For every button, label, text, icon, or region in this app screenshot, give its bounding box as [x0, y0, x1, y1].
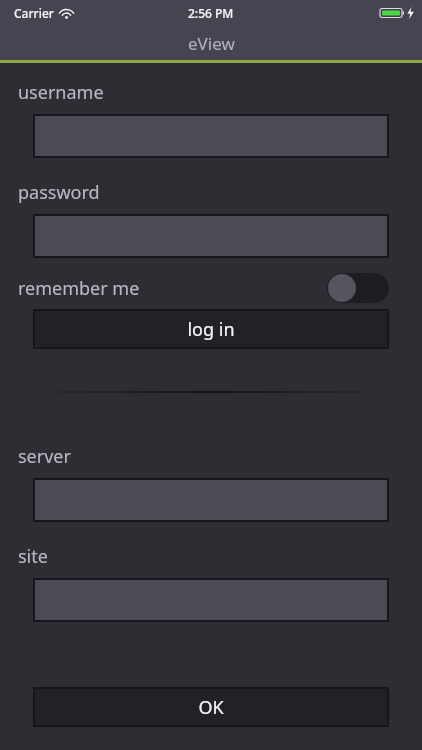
staticText: Carrier: [14, 5, 54, 21]
button[interactable]: Remember me toggle: [327, 273, 389, 303]
staticText: site: [18, 544, 48, 569]
staticText: password: [18, 180, 100, 205]
staticText: log in: [187, 317, 235, 342]
staticText: server: [18, 444, 71, 469]
staticText: OK: [198, 695, 224, 720]
staticText: 2:56 PM: [188, 5, 234, 21]
staticText: username: [18, 80, 104, 105]
button[interactable]: log in: [35, 311, 387, 347]
staticText: remember me: [18, 276, 140, 301]
button[interactable]: OK: [35, 689, 387, 725]
staticText: eView: [188, 32, 235, 55]
button[interactable]: remember me: [18, 272, 389, 304]
